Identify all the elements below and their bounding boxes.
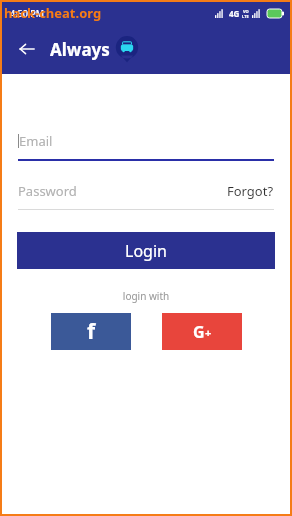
button[interactable]: Login with Google — [162, 313, 242, 350]
staticText: VO — [243, 9, 249, 14]
staticText: Forgot? — [227, 182, 274, 200]
staticText: 4:50 PM — [10, 7, 44, 19]
staticText: f — [87, 317, 96, 346]
staticText: LTE — [242, 14, 249, 19]
button[interactable]: Login — [17, 232, 275, 269]
button[interactable]: Vehicle — [112, 34, 142, 64]
staticText: + — [205, 325, 212, 340]
staticText: 4G — [229, 8, 240, 19]
staticText: G — [193, 321, 205, 343]
staticText: Login — [125, 240, 167, 262]
button[interactable]: Back — [11, 33, 43, 65]
button[interactable]: Forgot? — [227, 182, 274, 200]
button[interactable]: Login with Facebook — [51, 313, 131, 350]
staticText: login with — [2, 289, 290, 303]
staticText: Always — [50, 38, 110, 61]
staticText: Email — [19, 132, 53, 150]
staticText: hack-cheat.org — [4, 4, 102, 22]
button[interactable]: Password — [18, 182, 227, 200]
button[interactable]: Email — [18, 132, 274, 161]
